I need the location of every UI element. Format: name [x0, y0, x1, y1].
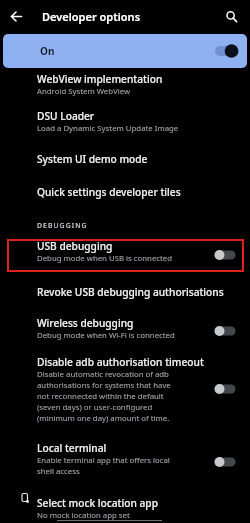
- button[interactable]: Wireless debugging: [0, 310, 250, 345]
- button[interactable]: Quick settings developer tiles: [0, 179, 250, 203]
- staticText: USB debugging: [37, 239, 113, 253]
- staticText: Load a Dynamic System Update Image: [37, 123, 179, 134]
- staticText: Quick settings developer tiles: [37, 185, 181, 199]
- button[interactable]: On: [3, 34, 247, 68]
- button[interactable]: System UI demo mode: [0, 146, 250, 170]
- button[interactable]: [0, 0, 33, 33]
- staticText: Android System WebView: [37, 86, 131, 97]
- staticText: Select mock location app: [37, 496, 158, 510]
- staticText: Local terminal: [37, 441, 107, 455]
- staticText: Disable automatic revocation of adb auth…: [37, 369, 171, 424]
- staticText: On: [40, 44, 55, 58]
- staticText: DEBUGGING: [37, 221, 88, 230]
- button[interactable]: Revoke USB debugging authorisations: [0, 279, 250, 303]
- staticText: Debug mode when Wi-Fi is connected: [37, 330, 175, 341]
- staticText: Disable adb authorisation timeout: [37, 355, 204, 369]
- button[interactable]: [214, 247, 240, 263]
- button[interactable]: [214, 323, 240, 339]
- staticText: Developer options: [42, 9, 141, 24]
- button[interactable]: DSU Loader: [0, 103, 250, 138]
- button[interactable]: USB debugging: [0, 233, 250, 268]
- button[interactable]: Disable adb authorisation timeout: [0, 349, 250, 428]
- staticText: No mock location app set: [37, 510, 130, 521]
- staticText: WebView implementation: [37, 72, 163, 86]
- button[interactable]: [214, 454, 240, 470]
- button[interactable]: [214, 381, 240, 397]
- staticText: DSU Loader: [37, 109, 95, 123]
- staticText: Revoke USB debugging authorisations: [37, 285, 224, 299]
- staticText: Debug mode when USB is connected: [37, 253, 173, 264]
- staticText: Enable terminal app that offers local sh…: [37, 455, 170, 477]
- staticText: System UI demo mode: [37, 152, 148, 166]
- button[interactable]: WebView implementation: [0, 66, 250, 101]
- staticText: Wireless debugging: [37, 316, 134, 330]
- button[interactable]: Select mock location app: [0, 490, 250, 523]
- button[interactable]: Local terminal: [0, 435, 250, 481]
- button[interactable]: [214, 0, 250, 33]
